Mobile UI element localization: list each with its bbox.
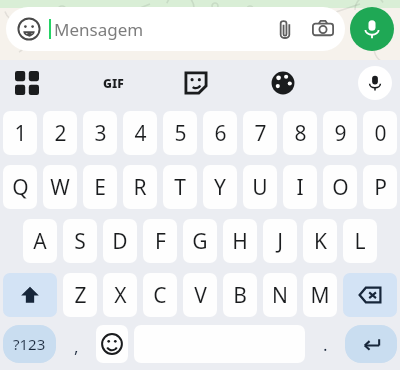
staticText: S [74,227,86,256]
staticText: L [354,227,366,256]
button[interactable]: F [143,219,177,263]
button[interactable]: L [343,219,377,263]
button[interactable]: Voice message [350,7,394,51]
staticText: T [174,173,186,202]
staticText: G [192,227,208,256]
button[interactable]: X [103,273,137,317]
staticText: . [323,333,328,356]
staticText: K [314,227,327,256]
button[interactable]: Emoji [96,325,128,363]
button[interactable]: Emoji [17,17,41,41]
button[interactable]: 1 [3,111,37,155]
staticText: 7 [254,119,267,148]
button[interactable]: A [23,219,57,263]
staticText: P [374,173,387,202]
staticText: J [277,227,283,256]
button[interactable]: Y [203,165,237,209]
staticText: 4 [134,119,147,148]
staticText: I [296,173,304,202]
staticText: 6 [214,119,227,148]
button[interactable]: . [308,322,342,366]
button[interactable]: S [63,219,97,263]
staticText: 2 [54,119,67,148]
button[interactable]: 7 [243,111,277,155]
button[interactable]: Z [63,273,97,317]
button[interactable]: D [103,219,137,263]
button[interactable]: J [263,219,297,263]
staticText: Z [74,281,87,310]
button[interactable]: W [43,165,77,209]
staticText: B [233,281,247,310]
button[interactable]: N [263,273,297,317]
button[interactable]: Attach [273,17,297,41]
button[interactable]: Shift [3,273,57,317]
button[interactable]: C [143,273,177,317]
staticText: ?123 [13,334,46,354]
staticText: U [252,173,268,202]
staticText: GIF [103,75,124,91]
button[interactable]: P [363,165,397,209]
button[interactable]: Enter [345,325,397,363]
staticText: N [272,281,288,310]
staticText: Q [12,173,29,202]
button[interactable]: 5 [163,111,197,155]
button[interactable]: V [183,273,217,317]
button[interactable]: 8 [283,111,317,155]
staticText: 3 [94,119,107,148]
staticText: 0 [374,119,387,148]
button[interactable]: T [163,165,197,209]
staticText: O [332,173,349,202]
staticText: Mensagem [54,18,144,41]
staticText: X [114,281,127,310]
button[interactable]: Emoji [6,7,345,51]
button[interactable]: O [323,165,357,209]
button[interactable]: ?123 [3,325,56,363]
staticText: 5 [174,119,187,148]
button[interactable]: Camera [311,17,335,41]
button[interactable]: 2 [43,111,77,155]
button[interactable]: H [223,219,257,263]
staticText: 1 [14,119,27,148]
button[interactable]: 6 [203,111,237,155]
staticText: , [74,335,79,358]
button[interactable]: I [283,165,317,209]
button[interactable]: M [303,273,337,317]
staticText: F [155,227,166,256]
button[interactable]: B [223,273,257,317]
button[interactable]: R [123,165,157,209]
button[interactable]: 3 [83,111,117,155]
staticText: R [133,173,147,202]
button[interactable]: , [59,322,93,366]
button[interactable]: K [303,219,337,263]
staticText: H [232,227,248,256]
staticText: W [50,173,70,202]
button[interactable]: 4 [123,111,157,155]
staticText: E [94,173,106,202]
button[interactable]: E [83,165,117,209]
staticText: 8 [294,119,307,148]
staticText: A [33,227,47,256]
staticText: C [153,281,167,310]
button[interactable]: 9 [323,111,357,155]
button[interactable]: Q [3,165,37,209]
button[interactable]: 0 [363,111,397,155]
button[interactable]: Backspace [343,273,397,317]
staticText: D [112,227,128,256]
button[interactable]: Voice input [358,66,392,100]
button[interactable]: GIF [96,66,130,100]
button[interactable]: G [183,219,217,263]
staticText: M [310,281,330,310]
staticText: 9 [334,119,347,148]
staticText: Y [214,173,226,202]
button[interactable]: Apps [12,68,42,98]
button[interactable]: U [243,165,277,209]
staticText: V [194,281,207,310]
button[interactable]: Themes [270,70,296,96]
button[interactable]: Stickers [182,69,210,97]
